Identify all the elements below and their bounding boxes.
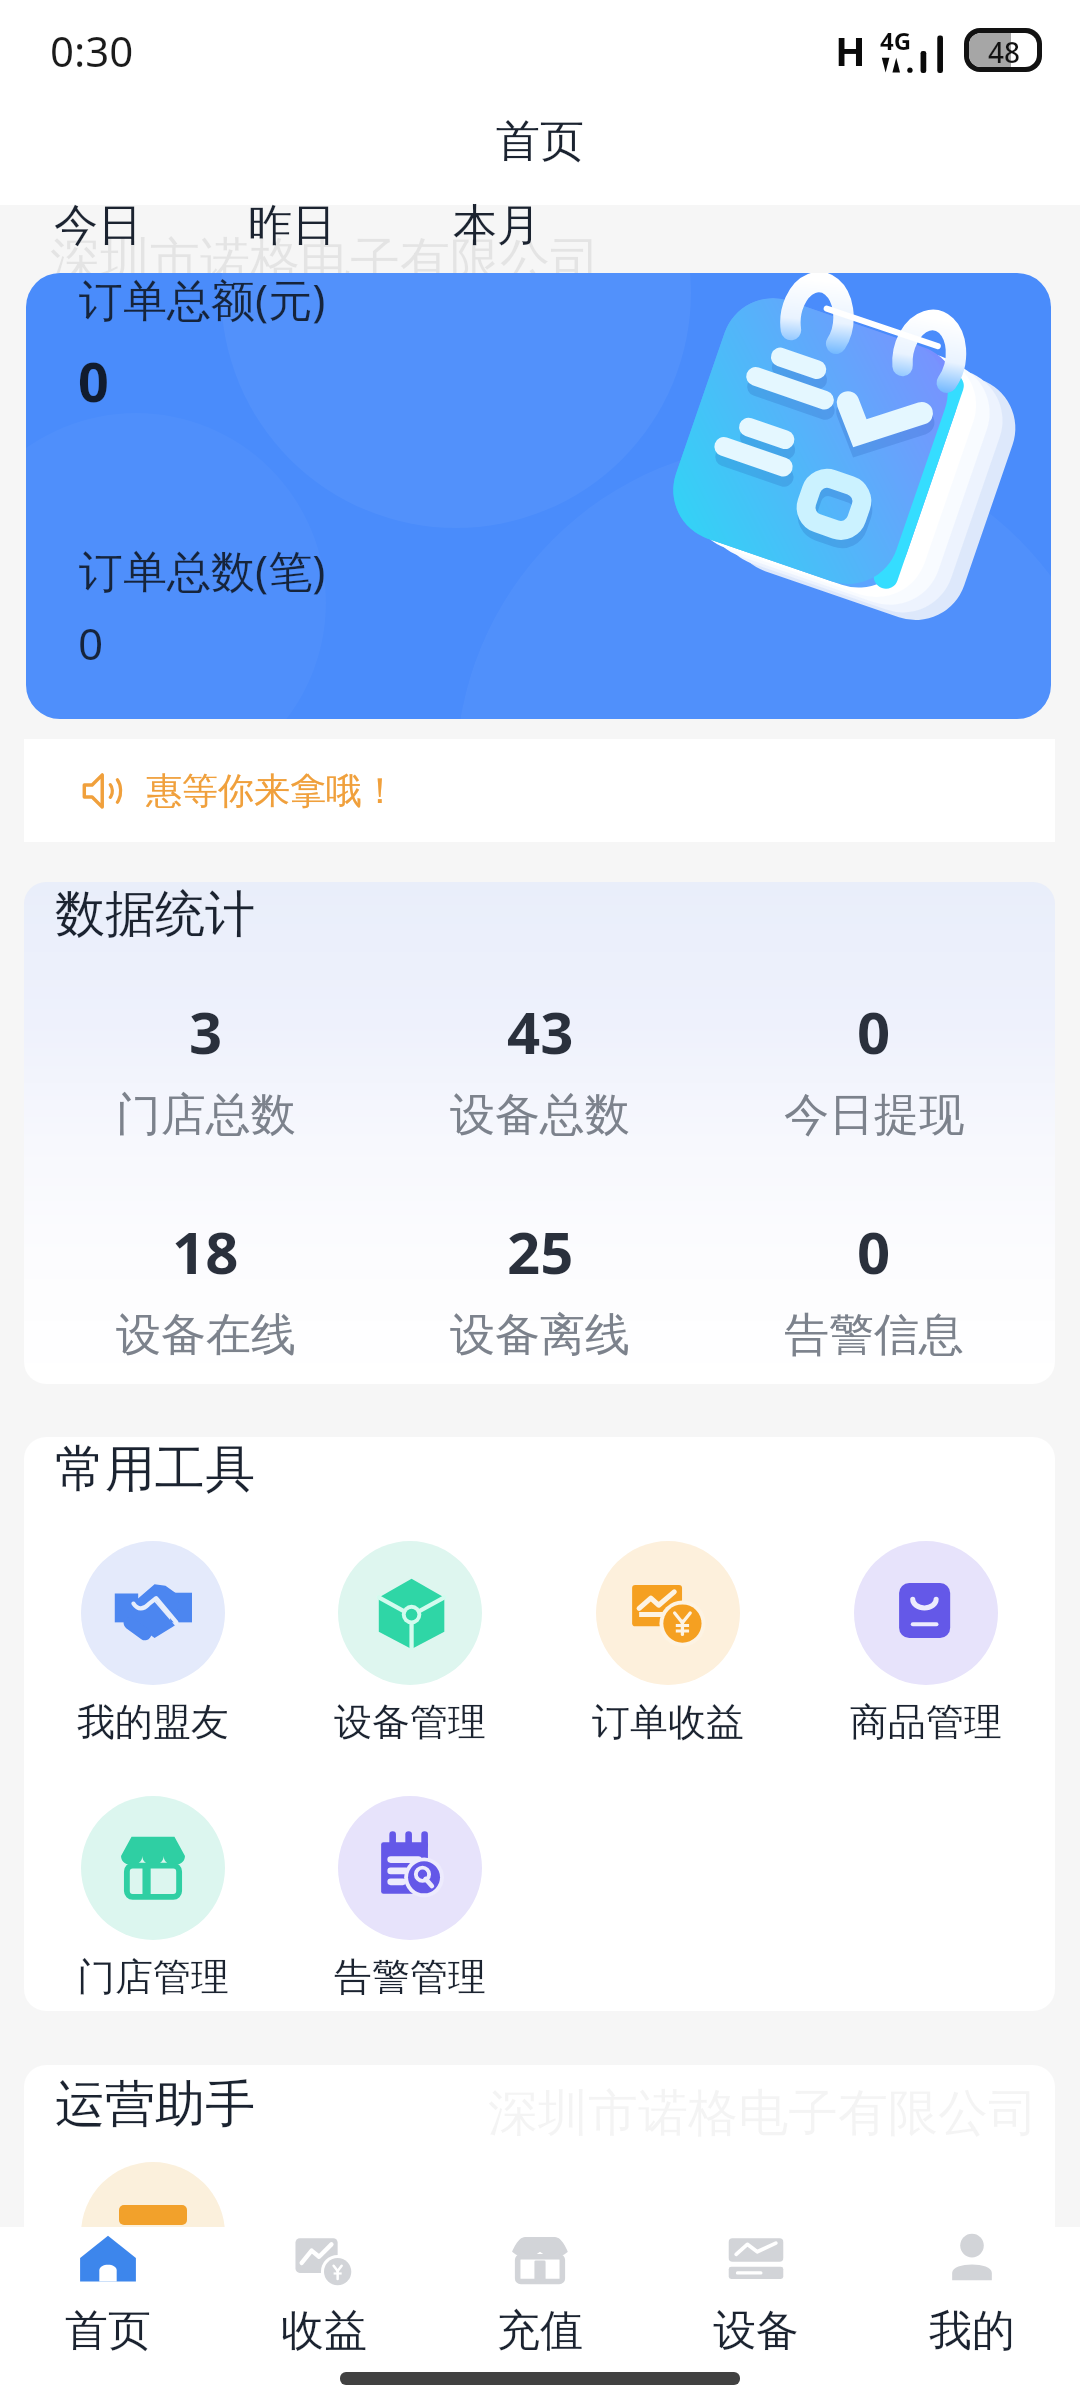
staticText: 3 bbox=[189, 992, 223, 1071]
button[interactable]: 25 bbox=[373, 1212, 707, 1364]
button[interactable]: 18 bbox=[38, 1212, 373, 1364]
button[interactable]: 设备管理 bbox=[281, 1541, 539, 1746]
staticText: 惠等你来拿哦！ bbox=[146, 768, 398, 813]
button[interactable]: 43 bbox=[373, 992, 707, 1144]
staticText: 18 bbox=[172, 1212, 239, 1291]
staticText: 昨日 bbox=[248, 198, 336, 253]
staticText: 我的盟友 bbox=[77, 1698, 229, 1746]
staticText: H bbox=[835, 23, 866, 77]
button[interactable]: 0 bbox=[707, 992, 1041, 1144]
button[interactable]: 本月 bbox=[423, 182, 571, 269]
staticText: 深圳市诺格电子有限公司 bbox=[488, 2082, 1038, 2145]
button[interactable]: 告警管理 bbox=[281, 1796, 539, 2001]
staticText: 充值 bbox=[497, 2304, 583, 2358]
staticText: 我的 bbox=[929, 2304, 1015, 2358]
staticText: 25 bbox=[507, 1212, 574, 1291]
staticText: 订单总数(笔) bbox=[79, 540, 326, 600]
staticText: 设备总数 bbox=[450, 1087, 630, 1144]
staticText: 告警管理 bbox=[334, 1953, 486, 2001]
staticText: 数据统计 bbox=[55, 883, 255, 946]
button[interactable]: 我的 bbox=[864, 2227, 1080, 2400]
button[interactable]: 订单收益 bbox=[539, 1541, 797, 1746]
staticText: 深圳市诺格电子有限公司 bbox=[50, 230, 600, 293]
staticText: 设备管理 bbox=[334, 1698, 486, 1746]
staticText: 常用工具 bbox=[55, 1438, 255, 1501]
staticText: 门店总数 bbox=[116, 1087, 296, 1144]
button[interactable]: 运营助手 bbox=[81, 2162, 225, 2306]
button[interactable]: 惠等你来拿哦！ bbox=[24, 739, 1055, 842]
button[interactable]: 3 bbox=[38, 992, 373, 1144]
staticText: 首页 bbox=[496, 114, 584, 169]
button[interactable]: 我的盟友 bbox=[24, 1541, 281, 1746]
staticText: 告警信息 bbox=[784, 1307, 964, 1364]
button[interactable]: 今日 bbox=[24, 182, 172, 269]
button[interactable]: 门店管理 bbox=[24, 1796, 281, 2001]
staticText: 设备 bbox=[713, 2304, 799, 2358]
staticText: 4G bbox=[880, 24, 912, 57]
staticText: 0:30 bbox=[50, 22, 134, 79]
staticText: 收益 bbox=[281, 2304, 367, 2358]
staticText: 48 bbox=[988, 33, 1021, 67]
staticText: 首页 bbox=[65, 2304, 151, 2358]
staticText: 0 bbox=[78, 344, 109, 418]
staticText: 商品管理 bbox=[850, 1698, 1002, 1746]
button[interactable]: 充值 bbox=[432, 2227, 648, 2400]
staticText: 运营助手 bbox=[55, 2073, 255, 2136]
staticText: 43 bbox=[507, 992, 574, 1071]
staticText: 设备离线 bbox=[450, 1307, 630, 1364]
button[interactable]: 0 bbox=[707, 1212, 1041, 1364]
button[interactable]: 首页 bbox=[0, 2227, 216, 2400]
button[interactable]: 昨日 bbox=[218, 182, 366, 269]
staticText: 今日提现 bbox=[784, 1087, 964, 1144]
button[interactable]: 订单总额(元) bbox=[26, 273, 1051, 719]
staticText: 订单收益 bbox=[592, 1698, 744, 1746]
staticText: 0 bbox=[78, 613, 104, 673]
staticText: 0 bbox=[857, 992, 891, 1071]
staticText: 门店管理 bbox=[77, 1953, 229, 2001]
staticText: 今日 bbox=[54, 198, 142, 253]
staticText: 0 bbox=[857, 1212, 891, 1291]
staticText: 本月 bbox=[453, 198, 541, 253]
staticText: 订单总额(元) bbox=[79, 273, 326, 329]
staticText: 设备在线 bbox=[116, 1307, 296, 1364]
button[interactable]: 商品管理 bbox=[797, 1541, 1055, 1746]
button[interactable]: 收益 bbox=[216, 2227, 432, 2400]
button[interactable]: 设备 bbox=[648, 2227, 864, 2400]
